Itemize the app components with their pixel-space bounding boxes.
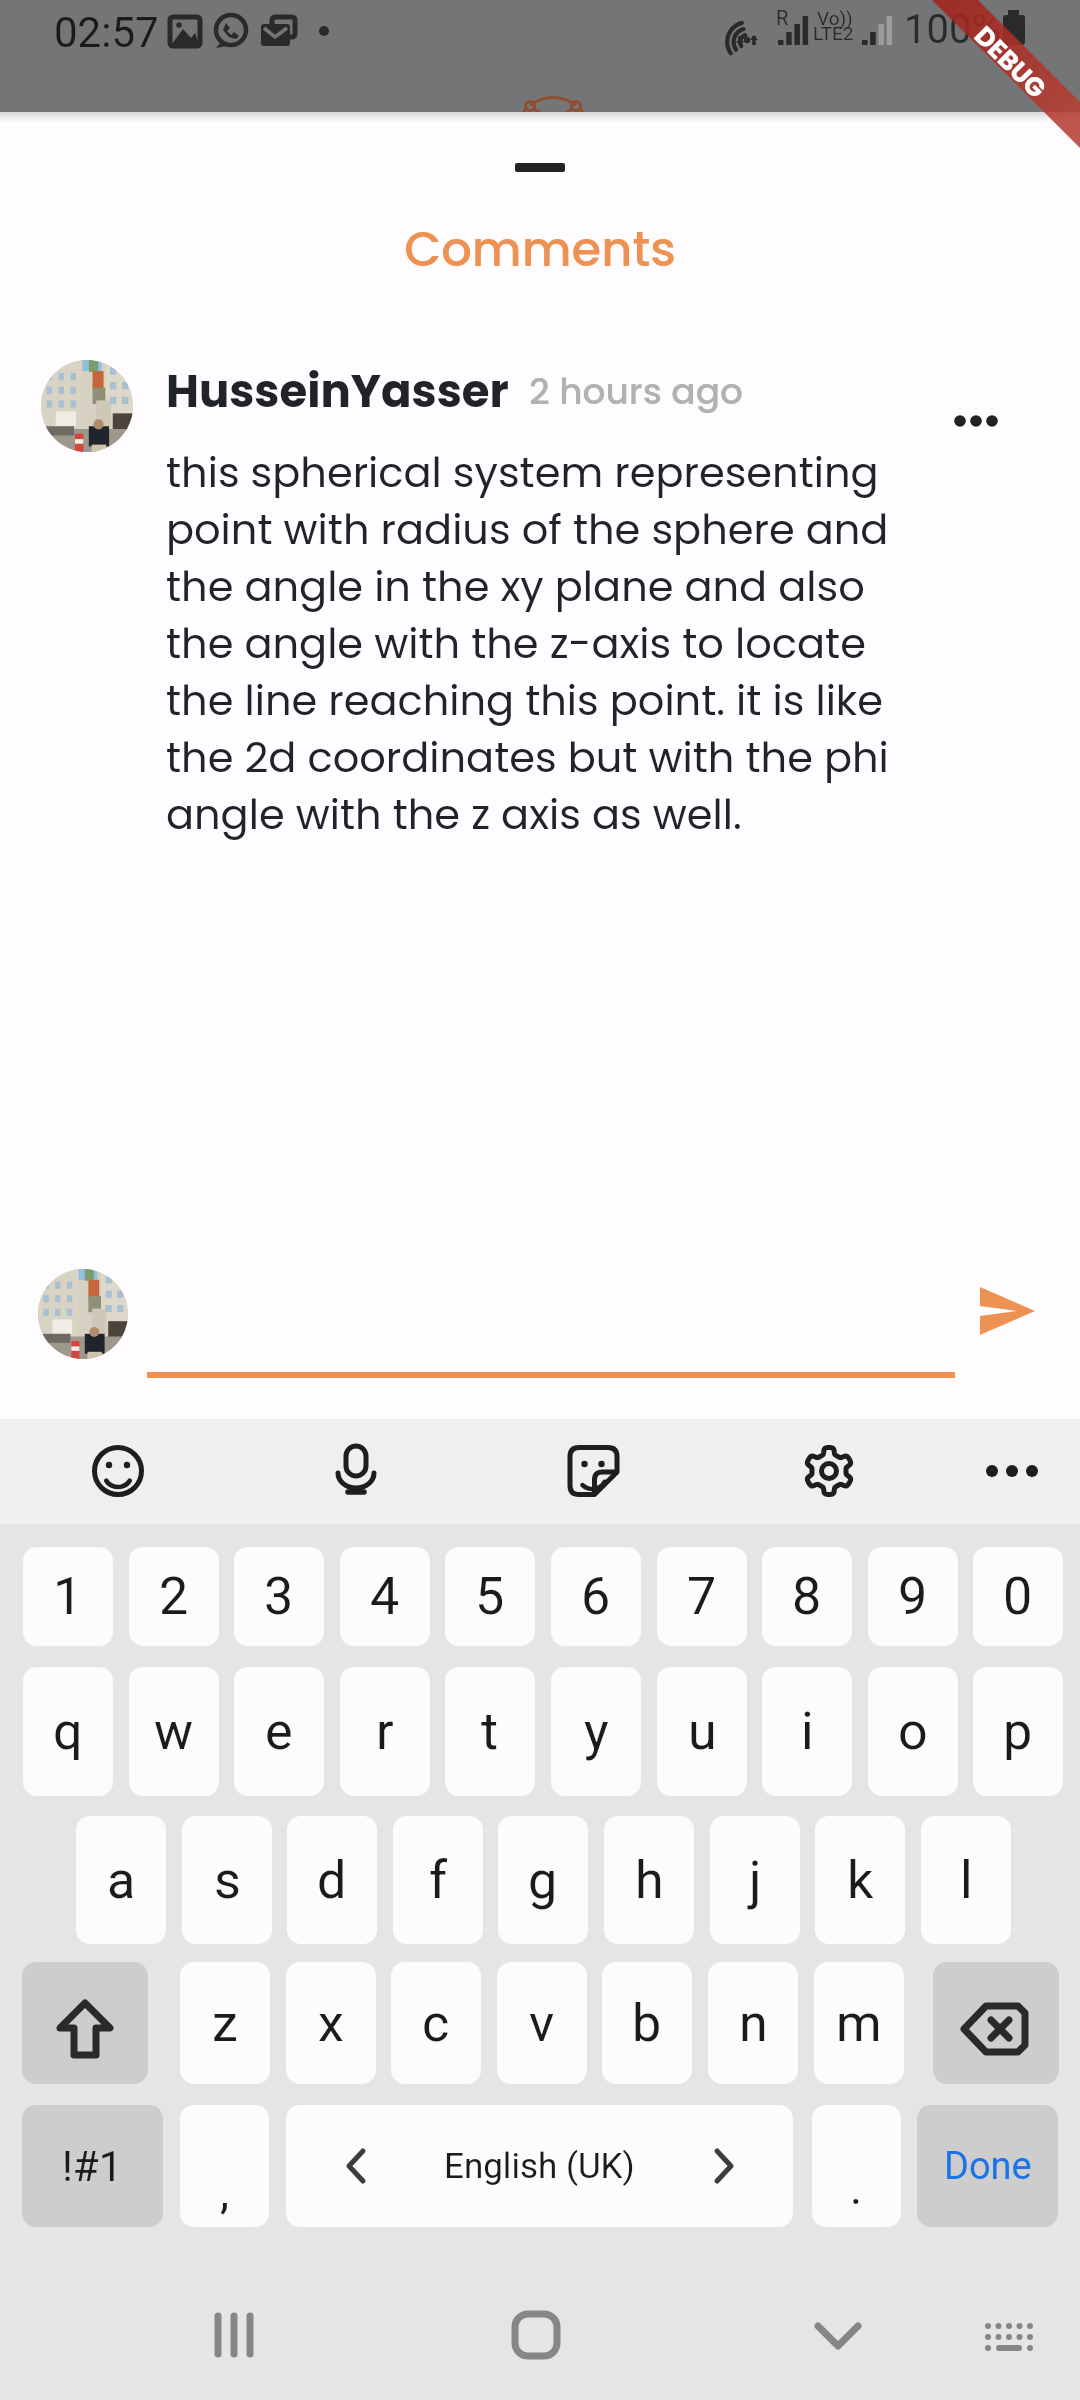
staticText: r: [376, 1701, 394, 1762]
button[interactable]: e: [234, 1667, 324, 1796]
button[interactable]: a: [76, 1816, 166, 1944]
staticText: 6: [581, 1566, 611, 1627]
button[interactable]: l: [921, 1816, 1011, 1944]
button[interactable]: f: [393, 1816, 483, 1944]
staticText: 7: [687, 1566, 717, 1627]
button[interactable]: 0: [973, 1547, 1063, 1646]
staticText: n: [739, 1993, 768, 2054]
button[interactable]: 6: [551, 1547, 641, 1646]
staticText: DEBUG: [966, 18, 1055, 107]
staticText: w: [154, 1701, 194, 1762]
button[interactable]: p: [973, 1667, 1063, 1796]
button[interactable]: o: [868, 1667, 958, 1796]
staticText: 2 hours ago: [529, 366, 744, 416]
staticText: R: [776, 6, 789, 29]
staticText: 100%: [904, 6, 1001, 53]
button[interactable]: z: [180, 1962, 270, 2084]
button[interactable]: Switch keyboard: [953, 2270, 1063, 2380]
button[interactable]: Stickers: [540, 1419, 644, 1523]
button[interactable]: c: [391, 1962, 481, 2084]
button[interactable]: Settings: [777, 1419, 881, 1523]
button[interactable]: Recents: [179, 2270, 289, 2380]
staticText: 02:57: [54, 8, 159, 57]
staticText: 9: [898, 1566, 928, 1627]
button[interactable]: v: [497, 1962, 587, 2084]
button[interactable]: .: [812, 2105, 901, 2227]
button[interactable]: English (UK): [286, 2105, 793, 2227]
button[interactable]: Backspace: [933, 1962, 1059, 2084]
button[interactable]: Done: [917, 2105, 1058, 2227]
button[interactable]: 7: [657, 1547, 747, 1646]
button[interactable]: j: [710, 1816, 800, 1944]
staticText: p: [1003, 1701, 1033, 1762]
staticText: .: [850, 2161, 863, 2215]
staticText: 1: [53, 1566, 83, 1627]
button[interactable]: 2: [129, 1547, 219, 1646]
staticText: z: [212, 1993, 238, 2054]
staticText: 4: [370, 1566, 400, 1627]
staticText: m: [836, 1993, 882, 2054]
staticText: v: [529, 1993, 555, 2054]
button[interactable]: More options: [930, 373, 1022, 465]
button[interactable]: h: [604, 1816, 694, 1944]
staticText: HusseinYasser: [166, 360, 509, 423]
button[interactable]: g: [498, 1816, 588, 1944]
button[interactable]: x: [286, 1962, 376, 2084]
staticText: b: [632, 1993, 662, 2054]
button[interactable]: n: [708, 1962, 798, 2084]
staticText: y: [584, 1701, 609, 1762]
staticText: f: [429, 1850, 448, 1911]
staticText: q: [53, 1701, 83, 1762]
staticText: x: [318, 1993, 344, 2054]
button[interactable]: Home: [481, 2270, 591, 2380]
button[interactable]: k: [815, 1816, 905, 1944]
staticText: l: [960, 1850, 973, 1911]
staticText: o: [898, 1701, 928, 1762]
staticText: u: [688, 1701, 717, 1762]
button[interactable]: w: [129, 1667, 219, 1796]
staticText: e: [265, 1701, 293, 1762]
button[interactable]: d: [287, 1816, 377, 1944]
button[interactable]: !#1: [22, 2105, 163, 2227]
button[interactable]: 4: [340, 1547, 430, 1646]
staticText: ,: [220, 2165, 230, 2219]
staticText: s: [214, 1850, 241, 1911]
button[interactable]: Voice input: [303, 1419, 407, 1523]
button[interactable]: r: [340, 1667, 430, 1796]
button[interactable]: Hide keyboard: [783, 2270, 893, 2380]
button[interactable]: u: [657, 1667, 747, 1796]
button[interactable]: m: [814, 1962, 904, 2084]
staticText: Comments: [0, 216, 1080, 283]
button[interactable]: Send comment: [952, 1272, 1038, 1358]
staticText: !#1: [62, 2142, 123, 2191]
button[interactable]: 8: [762, 1547, 852, 1646]
staticText: j: [749, 1850, 762, 1911]
button[interactable]: t: [445, 1667, 535, 1796]
staticText: English (UK): [444, 2146, 635, 2187]
staticText: a: [107, 1850, 136, 1911]
button[interactable]: y: [551, 1667, 641, 1796]
staticText: 8: [792, 1566, 822, 1627]
button[interactable]: Shift: [22, 1962, 148, 2084]
button[interactable]: ,: [180, 2105, 269, 2227]
button[interactable]: More: [960, 1419, 1064, 1523]
staticText: c: [422, 1993, 450, 2054]
staticText: k: [847, 1850, 874, 1911]
button[interactable]: 9: [868, 1547, 958, 1646]
button[interactable]: 5: [445, 1547, 535, 1646]
button[interactable]: s: [182, 1816, 272, 1944]
staticText: t: [481, 1701, 499, 1762]
staticText: LTE2: [813, 22, 854, 44]
button[interactable]: 1: [23, 1547, 113, 1646]
button[interactable]: i: [762, 1667, 852, 1796]
button[interactable]: 3: [234, 1547, 324, 1646]
staticText: g: [528, 1850, 558, 1911]
button[interactable]: Emoji: [66, 1419, 170, 1523]
staticText: 0: [1003, 1566, 1033, 1627]
staticText: i: [801, 1701, 814, 1762]
button[interactable]: q: [23, 1667, 113, 1796]
staticText: h: [635, 1850, 664, 1911]
button[interactable]: b: [602, 1962, 692, 2084]
staticText: 5: [475, 1566, 505, 1627]
staticText: d: [317, 1850, 347, 1911]
